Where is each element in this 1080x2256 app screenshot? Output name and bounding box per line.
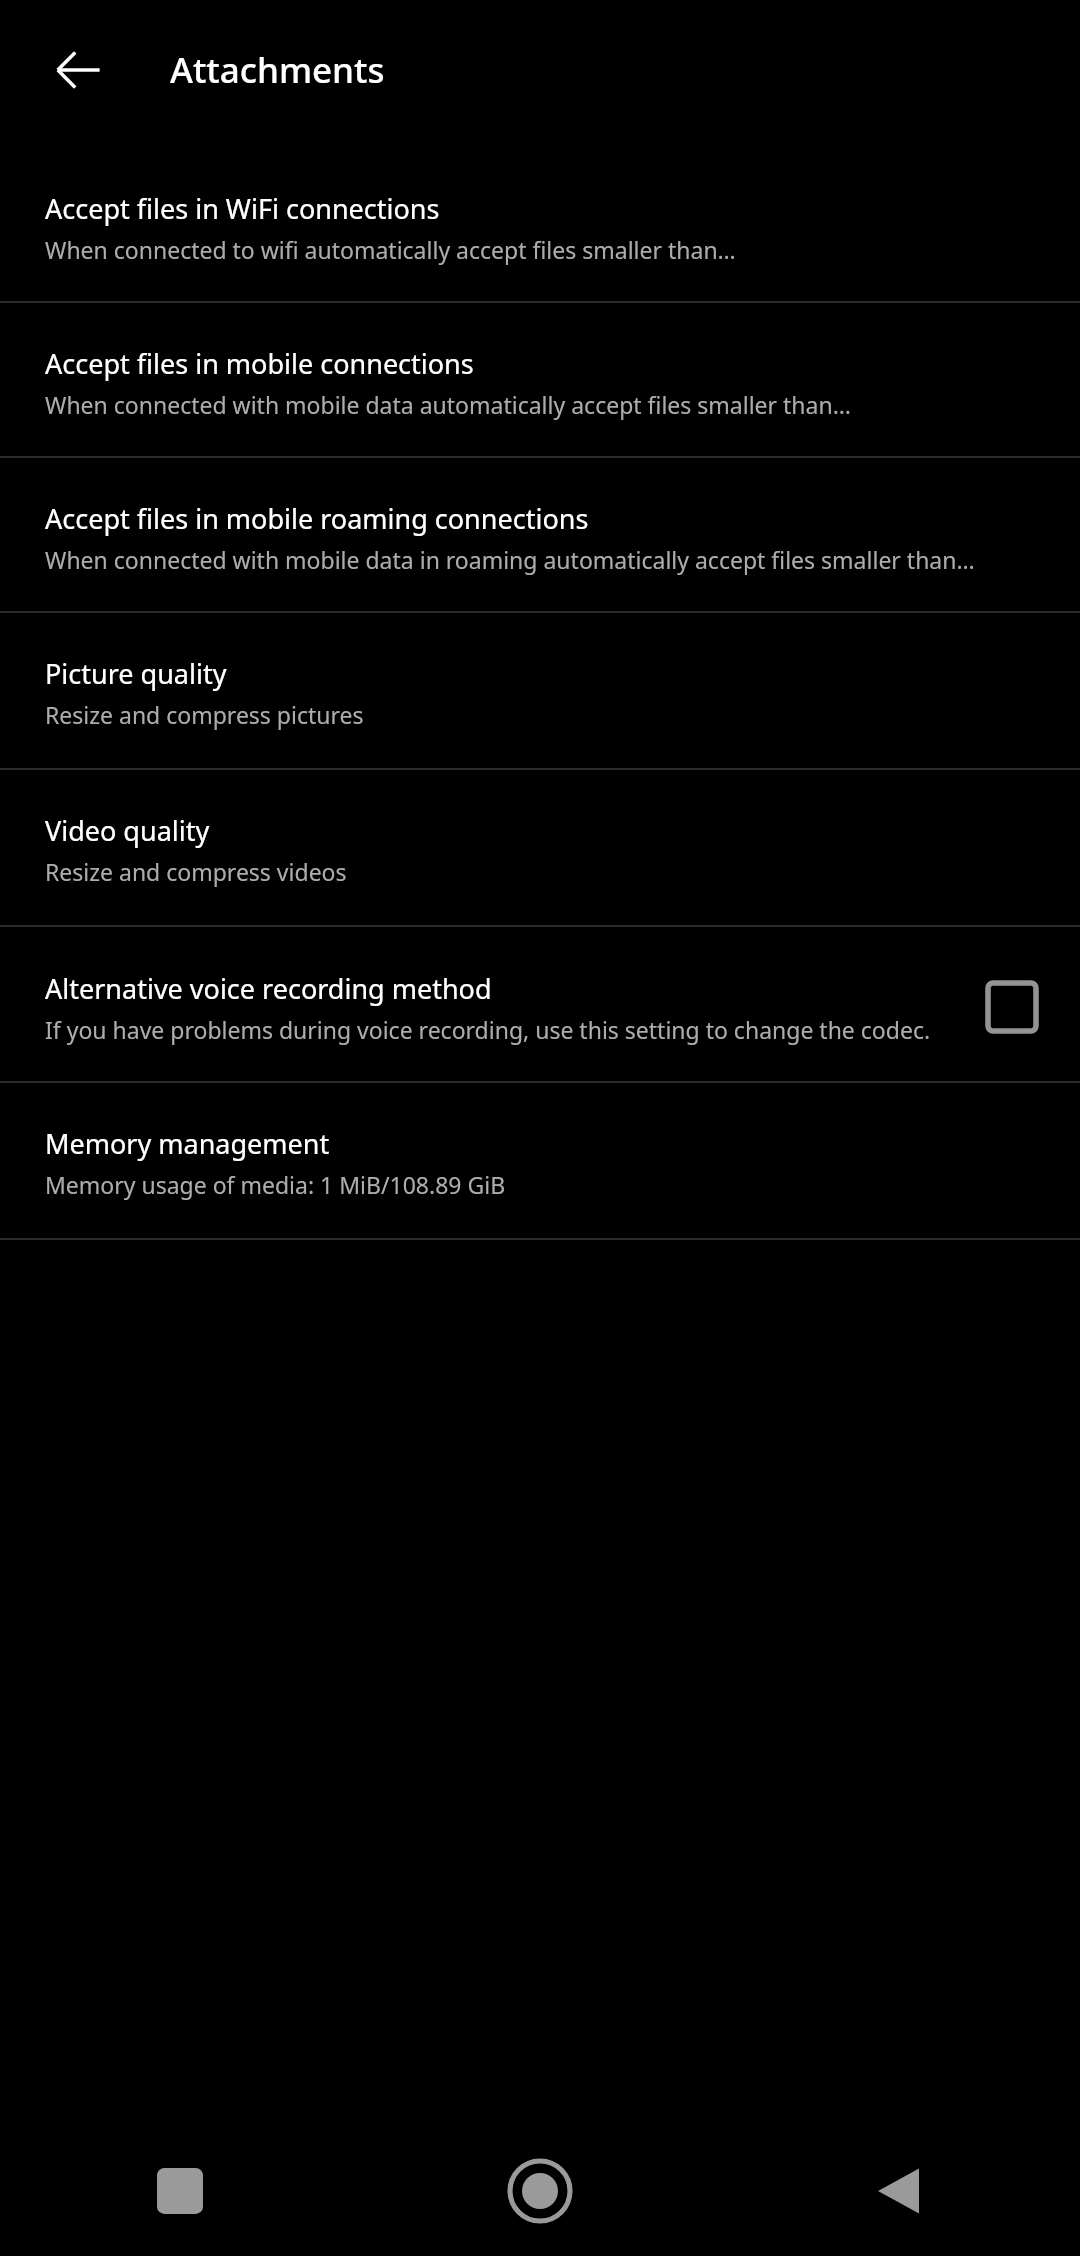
- button[interactable]: Picture quality: [0, 613, 1080, 768]
- staticText: Resize and compress pictures: [45, 699, 364, 730]
- staticText: If you have problems during voice record…: [45, 1014, 931, 1045]
- staticText: Accept files in mobile connections: [45, 345, 474, 382]
- staticText: Accept files in WiFi connections: [45, 190, 440, 227]
- button[interactable]: Accept files in mobile connections: [0, 303, 1080, 456]
- staticText: Memory management: [45, 1125, 330, 1162]
- staticText: When connected with mobile data automati…: [45, 389, 851, 420]
- staticText: Video quality: [45, 812, 210, 849]
- staticText: When connected to wifi automatically acc…: [45, 234, 736, 265]
- button[interactable]: Memory management: [0, 1083, 1080, 1238]
- staticText: Resize and compress videos: [45, 856, 347, 887]
- button[interactable]: Alternative voice recording method check…: [974, 969, 1050, 1045]
- staticText: Alternative voice recording method: [45, 970, 492, 1007]
- button[interactable]: Home: [360, 2161, 720, 2221]
- button[interactable]: Video quality: [0, 770, 1080, 925]
- button[interactable]: Alternative voice recording method: [0, 927, 1080, 1081]
- staticText: Memory usage of media: 1 MiB/108.89 GiB: [45, 1169, 506, 1200]
- button[interactable]: Recent apps: [0, 2168, 360, 2214]
- button[interactable]: Back: [30, 22, 126, 118]
- button[interactable]: Accept files in WiFi connections: [0, 140, 1080, 301]
- staticText: Attachments: [170, 46, 385, 94]
- button[interactable]: Accept files in mobile roaming connectio…: [0, 458, 1080, 611]
- staticText: Accept files in mobile roaming connectio…: [45, 500, 589, 537]
- staticText: When connected with mobile data in roami…: [45, 544, 975, 575]
- button[interactable]: Back: [720, 2166, 1080, 2216]
- staticText: Picture quality: [45, 655, 227, 692]
